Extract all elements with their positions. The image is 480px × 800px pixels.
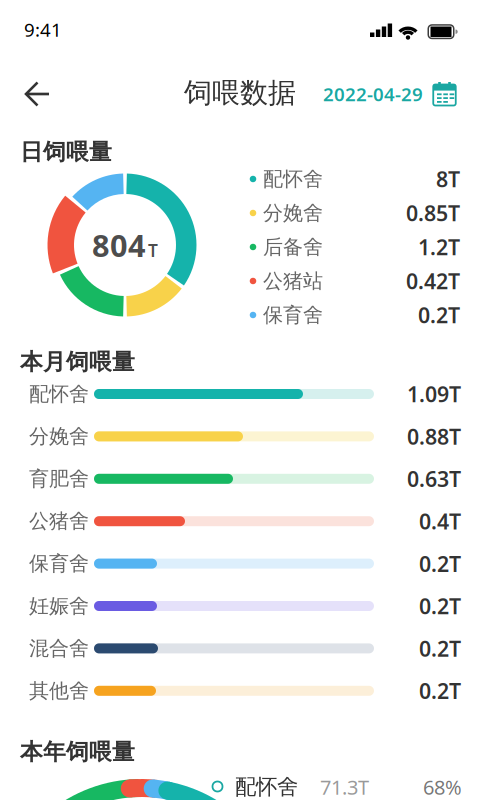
staticText: 公猪站 [263,269,323,293]
staticText: 804 [92,225,146,265]
staticText: 0.63T [407,465,461,493]
staticText: 68% [423,774,462,800]
staticText: 0.2T [419,677,461,705]
staticText: 1.09T [407,380,461,408]
staticText: 育肥舍 [29,466,89,491]
staticText: 公猪舍 [29,509,89,533]
staticText: 分娩舍 [263,201,323,225]
staticText: 配怀舍 [235,774,298,800]
staticText: 0.2T [419,549,461,578]
staticText: 9:41 [24,17,62,42]
staticText: 71.3T [320,774,369,800]
staticText: 混合舍 [29,636,89,661]
staticText: 2022-04-29 [323,82,423,106]
staticText: 其他舍 [29,678,89,703]
staticText: 本年饲喂量 [20,738,135,766]
staticText: 保育舍 [263,303,323,327]
staticText: 0.42T [406,267,460,295]
staticText: 1.2T [418,233,460,261]
staticText: 0.4T [419,507,461,535]
staticText: 后备舍 [263,235,323,259]
staticText: 饲喂数据 [184,76,296,110]
staticText: 8T [436,165,460,193]
staticText: 0.2T [419,592,461,620]
staticText: T [148,239,158,262]
staticText: 分娩舍 [29,424,89,449]
staticText: 0.2T [419,634,461,662]
button[interactable]: Back [15,72,59,116]
staticText: 保育舍 [29,551,89,576]
staticText: 0.85T [406,199,460,227]
button[interactable]: 2022-04-29 [306,82,456,106]
staticText: 0.2T [418,301,460,329]
staticText: 本月饲喂量 [20,348,135,376]
staticText: 配怀舍 [29,382,89,406]
staticText: 0.88T [407,422,461,450]
staticText: 妊娠舍 [29,594,89,618]
staticText: 配怀舍 [263,167,323,191]
staticText: 日饲喂量 [20,138,112,166]
